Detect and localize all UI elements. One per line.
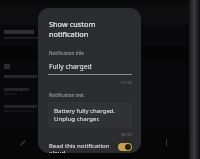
button[interactable]: Read this notification aloud: [38, 141, 141, 153]
staticText: 38/90: [38, 131, 132, 137]
button[interactable]: Read this notification aloud: [118, 143, 132, 151]
staticText: Read this notification aloud: [49, 141, 118, 153]
staticText: Notification text: [49, 92, 141, 98]
staticText: Battery fully charged. Unplug charger.: [54, 106, 125, 123]
staticText: 13/30: [38, 79, 132, 85]
staticText: Notification title: [49, 50, 141, 56]
staticText: Fully charged: [49, 62, 141, 71]
staticText: Show custom notification: [49, 19, 133, 39]
button[interactable]: Battery fully charged. Unplug charger.: [48, 102, 132, 128]
